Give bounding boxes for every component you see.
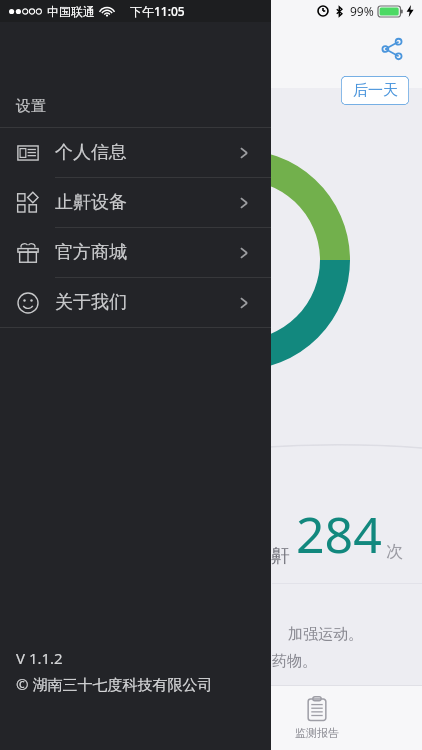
staticText: 监测报告 (295, 726, 339, 740)
button[interactable]: 关于我们 (0, 278, 271, 327)
staticText: 止鼾 (252, 544, 290, 568)
staticText: 加强运动。 (288, 625, 363, 644)
staticText: 药物。 (272, 652, 317, 671)
button[interactable]: Share (375, 32, 409, 66)
staticText: 中国联通 (47, 4, 95, 19)
staticText: 284 (296, 500, 382, 568)
staticText: 下午11:05 (130, 3, 185, 19)
staticText: V 1.1.2 (16, 648, 63, 668)
staticText: 官方商城 (55, 241, 127, 264)
staticText: 后一天 (353, 81, 398, 100)
staticText: 次 (386, 541, 403, 562)
staticText: 99% (350, 3, 374, 19)
staticText: 个人信息 (55, 141, 127, 164)
button[interactable]: 后一天 (341, 76, 409, 105)
staticText: 设置 (16, 97, 46, 116)
button[interactable]: 官方商城 (0, 228, 271, 277)
button[interactable]: 止鼾设备 (0, 178, 271, 227)
staticText: 止鼾设备 (55, 191, 127, 214)
staticText: © 湖南三十七度科技有限公司 (16, 674, 213, 694)
staticText: 关于我们 (55, 291, 127, 314)
button[interactable]: 监测报告 (282, 685, 352, 750)
button[interactable]: 个人信息 (0, 128, 271, 177)
